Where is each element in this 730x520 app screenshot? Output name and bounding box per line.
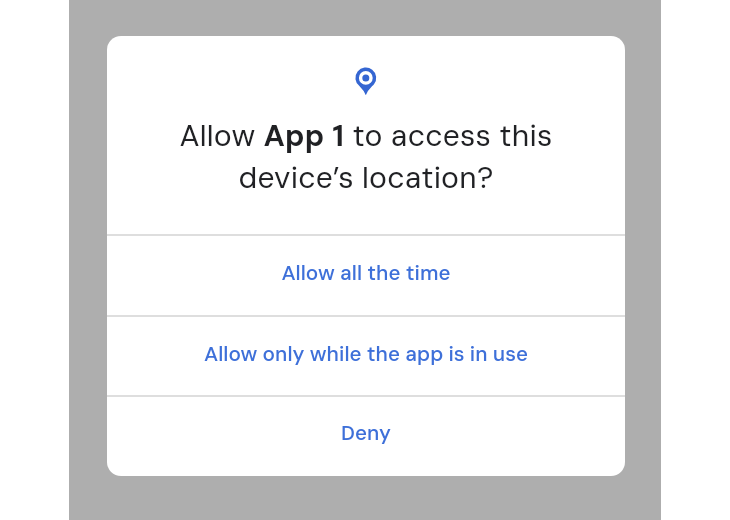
button[interactable]: Deny bbox=[107, 397, 625, 476]
staticText: Allow App 1 to access this device’s loca… bbox=[107, 116, 625, 197]
button[interactable]: Allow only while the app is in use bbox=[107, 317, 625, 395]
button[interactable]: Allow all the time bbox=[107, 236, 625, 316]
staticText: Allow only while the app is in use bbox=[204, 341, 528, 368]
staticText: Allow all the time bbox=[281, 260, 451, 287]
staticText: Deny bbox=[341, 420, 391, 447]
